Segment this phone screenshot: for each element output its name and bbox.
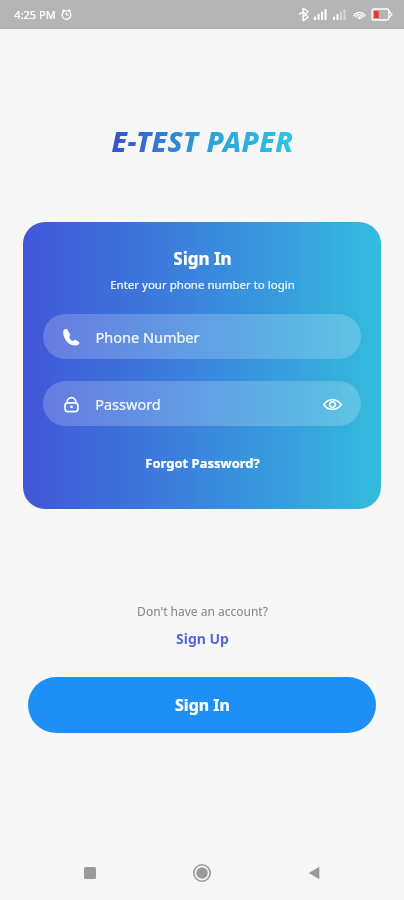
button[interactable]: Sign Up — [168, 627, 237, 650]
button[interactable]: Forgot Password? — [135, 450, 270, 476]
staticText: Sign Up — [176, 629, 229, 648]
button[interactable]: Back — [292, 851, 336, 895]
staticText: Forgot Password? — [145, 454, 260, 472]
staticText: Sign In — [175, 694, 230, 716]
staticText: 4:25 PM — [14, 7, 56, 22]
staticText: Password — [95, 394, 161, 414]
staticText: E-TEST PAPER — [111, 122, 294, 160]
staticText: Phone Number — [95, 327, 200, 347]
button[interactable]: Password — [43, 381, 361, 426]
button[interactable]: Home — [180, 851, 224, 895]
staticText: Sign In — [173, 247, 232, 270]
staticText: Don't have an account? — [137, 603, 268, 619]
staticText: Enter your phone number to login — [110, 277, 295, 293]
button[interactable]: Show password — [321, 393, 343, 415]
button[interactable]: Sign In — [28, 677, 376, 733]
button[interactable]: Recents — [68, 851, 112, 895]
button[interactable]: Phone Number — [43, 314, 361, 359]
